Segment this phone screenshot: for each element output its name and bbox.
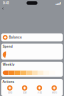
staticText: Actions (2, 80, 14, 84)
staticText: Scan (23, 91, 27, 94)
staticText: More (52, 91, 57, 94)
staticText: ▂▃▮ (55, 1, 61, 5)
button[interactable]: Scan (17, 85, 32, 94)
staticText: Weekly (3, 63, 15, 66)
button[interactable]: More (47, 85, 62, 94)
button[interactable]: Back (1, 6, 5, 11)
staticText: Spend (3, 45, 13, 48)
staticText: Add (37, 91, 41, 94)
staticText: Balance (9, 36, 22, 39)
button[interactable]: Balance (1, 33, 63, 41)
button[interactable]: Send (2, 85, 17, 94)
button[interactable]: Add (32, 85, 47, 94)
staticText: Send (8, 91, 12, 94)
staticText: 9:41 (3, 1, 10, 5)
